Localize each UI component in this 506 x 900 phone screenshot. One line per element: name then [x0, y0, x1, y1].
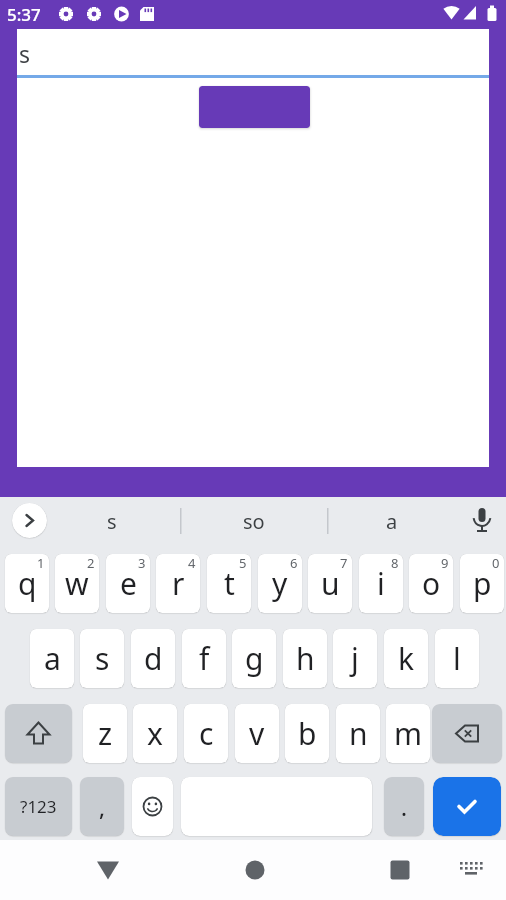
button[interactable]	[382, 852, 418, 888]
button[interactable]: w	[55, 554, 99, 613]
staticText: g	[245, 638, 264, 679]
staticText: l	[453, 638, 461, 679]
button[interactable]	[432, 704, 502, 763]
button[interactable]: k	[384, 629, 428, 688]
button[interactable]: s	[60, 497, 164, 545]
staticText: a	[386, 508, 398, 535]
button[interactable]: q	[5, 554, 49, 613]
button[interactable]: j	[333, 629, 377, 688]
button[interactable]	[12, 503, 47, 538]
button[interactable]: ,	[80, 777, 124, 836]
staticText: s	[19, 38, 31, 69]
staticText: 6	[290, 554, 298, 572]
staticText: j	[351, 638, 359, 679]
button[interactable]: c	[184, 704, 228, 763]
button[interactable]: t	[207, 554, 251, 613]
button[interactable]: d	[131, 629, 175, 688]
staticText: 5:37	[7, 3, 41, 26]
button[interactable]: x	[133, 704, 177, 763]
button[interactable]: p	[460, 554, 504, 613]
staticText: a	[44, 638, 61, 679]
button[interactable]: e	[106, 554, 150, 613]
button[interactable]: g	[232, 629, 276, 688]
staticText: o	[422, 563, 441, 604]
staticText: i	[377, 563, 385, 604]
staticText: 8	[391, 554, 399, 572]
staticText: h	[296, 638, 315, 679]
button[interactable]: o	[409, 554, 453, 613]
staticText: y	[272, 563, 288, 604]
button[interactable]: y	[258, 554, 302, 613]
staticText: r	[172, 563, 185, 604]
button[interactable]: u	[308, 554, 352, 613]
button[interactable]: v	[235, 704, 279, 763]
staticText: 1	[37, 554, 45, 572]
button[interactable]: n	[336, 704, 380, 763]
staticText: c	[199, 713, 214, 754]
button[interactable]	[132, 777, 173, 836]
staticText: 7	[340, 554, 348, 572]
button[interactable]: m	[386, 704, 430, 763]
staticText: 3	[138, 554, 146, 572]
button[interactable]: so	[184, 497, 323, 545]
button[interactable]: ?123	[5, 777, 72, 836]
button[interactable]	[5, 704, 72, 763]
staticText: x	[147, 713, 163, 754]
staticText: 2	[87, 554, 95, 572]
staticText: k	[398, 638, 415, 679]
button[interactable]: z	[83, 704, 127, 763]
button[interactable]: l	[435, 629, 479, 688]
staticText: d	[144, 638, 163, 679]
button[interactable]	[458, 855, 486, 883]
button[interactable]: i	[359, 554, 403, 613]
staticText: z	[98, 713, 113, 754]
button[interactable]	[90, 852, 126, 888]
staticText: 9	[441, 554, 449, 572]
staticText: s	[107, 508, 117, 535]
button[interactable]	[433, 777, 501, 836]
staticText: ?123	[20, 795, 57, 818]
staticText: t	[224, 563, 235, 604]
button[interactable]: a	[30, 629, 74, 688]
staticText: v	[249, 713, 265, 754]
staticText: u	[321, 563, 340, 604]
button[interactable]: f	[182, 629, 226, 688]
button[interactable]: a	[330, 497, 454, 545]
staticText: m	[394, 713, 423, 754]
staticText: .	[401, 792, 407, 822]
staticText: so	[243, 508, 265, 535]
staticText: p	[473, 563, 492, 604]
button[interactable]: r	[156, 554, 200, 613]
button[interactable]: s	[80, 629, 124, 688]
staticText: e	[120, 563, 137, 604]
staticText: n	[349, 713, 368, 754]
staticText: w	[65, 563, 89, 604]
staticText: b	[298, 713, 317, 754]
button[interactable]: s	[17, 29, 489, 78]
staticText: s	[95, 638, 110, 679]
staticText: 0	[492, 554, 500, 572]
staticText: 5	[239, 554, 247, 572]
staticText: ,	[99, 792, 106, 822]
staticText: q	[18, 563, 37, 604]
button[interactable]: b	[285, 704, 329, 763]
staticText: 4	[188, 554, 196, 572]
button[interactable]: .	[384, 777, 424, 836]
staticText: f	[199, 638, 210, 679]
button[interactable]	[237, 852, 273, 888]
button[interactable]: h	[283, 629, 327, 688]
button[interactable]	[199, 86, 310, 128]
